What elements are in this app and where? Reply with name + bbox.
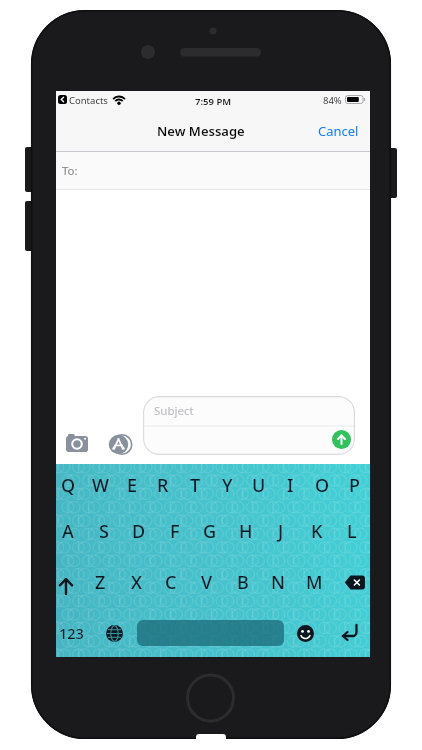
staticText: E — [127, 473, 138, 498]
staticText: N — [271, 570, 285, 595]
staticText: A — [62, 519, 74, 544]
button[interactable] — [58, 95, 67, 104]
staticText: L — [347, 519, 357, 544]
staticText: B — [237, 570, 249, 595]
button[interactable]: H — [236, 518, 256, 545]
button[interactable]: 123 — [58, 619, 85, 647]
staticText: M — [306, 570, 323, 595]
button[interactable]: X — [126, 569, 146, 596]
button[interactable]: F — [165, 518, 185, 545]
button[interactable]: R — [153, 472, 173, 498]
staticText: X — [131, 570, 142, 595]
staticText: F — [170, 519, 180, 544]
staticText: S — [99, 519, 109, 544]
staticText: Q — [61, 473, 76, 498]
staticText: O — [315, 473, 330, 498]
staticText: 7:59 PM — [195, 95, 232, 108]
button[interactable]: P — [344, 472, 364, 498]
button[interactable]: O — [312, 472, 332, 498]
button[interactable] — [339, 622, 361, 644]
button[interactable]: M — [304, 569, 324, 596]
button[interactable]: G — [200, 518, 220, 545]
staticText: To: — [62, 163, 78, 179]
button[interactable]: L — [342, 518, 362, 545]
staticText: D — [132, 519, 146, 544]
button[interactable]: U — [249, 472, 269, 498]
button[interactable]: D — [129, 518, 149, 545]
staticText: U — [252, 473, 266, 498]
staticText: Subject — [154, 403, 194, 419]
staticText: Contacts — [69, 94, 108, 107]
staticText: V — [201, 570, 213, 595]
button[interactable]: W — [90, 472, 110, 498]
button[interactable]: B — [233, 569, 253, 596]
button[interactable] — [297, 625, 314, 642]
button[interactable]: K — [307, 518, 327, 545]
button[interactable] — [332, 430, 351, 449]
staticText: New Message — [157, 122, 245, 140]
button[interactable] — [106, 625, 123, 642]
button[interactable]: N — [268, 569, 288, 596]
button[interactable]: Z — [90, 569, 110, 596]
button[interactable]: C — [161, 569, 181, 596]
button[interactable]: S — [94, 518, 114, 545]
button[interactable]: T — [185, 472, 205, 498]
button[interactable]: J — [271, 518, 291, 545]
button[interactable]: I — [280, 472, 300, 498]
staticText: G — [203, 519, 217, 544]
button[interactable]: Subject — [143, 396, 355, 455]
staticText: H — [239, 519, 253, 544]
staticText: I — [287, 473, 294, 498]
button[interactable] — [344, 575, 365, 590]
staticText: 84% — [323, 94, 342, 107]
button[interactable] — [108, 434, 133, 455]
staticText: P — [349, 473, 360, 498]
button[interactable]: Y — [217, 472, 237, 498]
button[interactable]: E — [122, 472, 142, 498]
button[interactable] — [66, 434, 88, 452]
staticText: Z — [95, 570, 106, 595]
staticText: T — [190, 473, 201, 498]
button[interactable]: Cancel — [318, 122, 359, 140]
button[interactable] — [56, 571, 76, 598]
button[interactable] — [137, 620, 284, 646]
staticText: Y — [222, 473, 233, 498]
button[interactable]: A — [58, 518, 78, 545]
staticText: J — [278, 519, 284, 544]
staticText: 123 — [59, 623, 84, 643]
staticText: Cancel — [318, 122, 359, 140]
button[interactable]: Q — [58, 472, 78, 498]
staticText: K — [311, 519, 323, 544]
staticText: W — [92, 473, 109, 498]
staticText: R — [157, 473, 169, 498]
button[interactable]: To: — [56, 152, 370, 189]
staticText: C — [165, 570, 177, 595]
button[interactable]: V — [197, 569, 217, 596]
